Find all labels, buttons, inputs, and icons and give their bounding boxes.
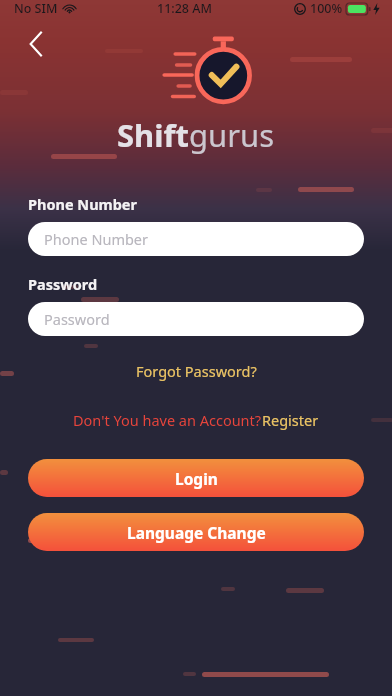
staticText: Shift <box>117 114 189 156</box>
staticText: Phone Number <box>28 194 137 214</box>
staticText: Password <box>28 274 98 294</box>
staticText: Register <box>262 410 319 430</box>
staticText: 11:28 AM <box>157 0 212 17</box>
staticText: Don't You have an Account? <box>73 410 262 430</box>
button[interactable]: Login <box>28 459 364 497</box>
staticText: Password <box>44 309 110 329</box>
button[interactable]: Language Change <box>28 513 364 551</box>
button[interactable]: Password <box>28 302 364 336</box>
button[interactable]: Phone Number <box>28 222 364 256</box>
staticText: Phone Number <box>44 229 149 249</box>
staticText: No SIM <box>14 0 58 17</box>
staticText: gurus <box>189 114 275 156</box>
button[interactable]: Don't You have an Account? <box>67 407 325 433</box>
staticText: Language Change <box>127 522 266 543</box>
button[interactable]: Back <box>14 22 58 66</box>
staticText: 100% <box>310 0 343 17</box>
button[interactable]: Forgot Password? <box>128 358 265 384</box>
staticText: Login <box>175 468 218 489</box>
staticText: Forgot Password? <box>136 361 257 381</box>
